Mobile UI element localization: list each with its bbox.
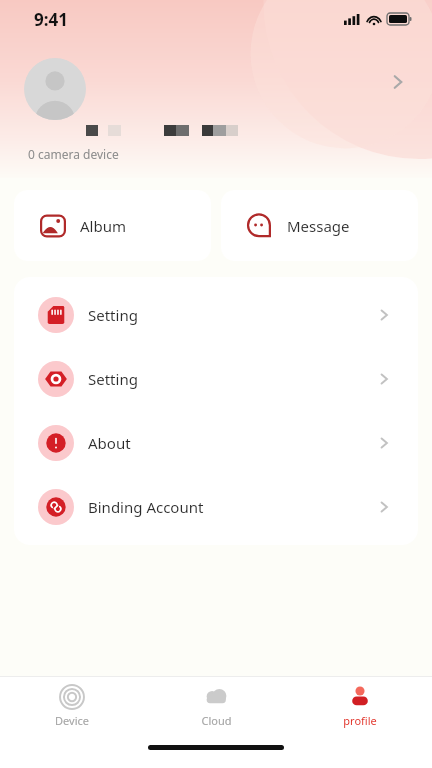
button[interactable]: profile [288,677,432,735]
button[interactable]: Message [221,190,418,261]
button[interactable]: Open profile [378,62,418,102]
button[interactable]: About [14,411,418,475]
staticText: Album [80,216,126,236]
staticText: Binding Account [88,497,376,517]
button[interactable]: Album [14,190,211,261]
button[interactable]: Setting [14,283,418,347]
staticText: 0 camera device [28,146,119,162]
button[interactable]: Device [0,677,144,735]
staticText: Setting [88,305,376,325]
staticText: About [88,433,376,453]
button[interactable]: Binding Account [14,475,418,539]
staticText: Device [55,713,89,728]
button[interactable]: Cloud [144,677,288,735]
staticText: 9:41 [34,8,68,31]
staticText: Cloud [201,713,232,728]
button[interactable]: Setting [14,347,418,411]
staticText: profile [343,713,377,728]
staticText: Setting [88,369,376,389]
staticText: Message [287,216,350,236]
